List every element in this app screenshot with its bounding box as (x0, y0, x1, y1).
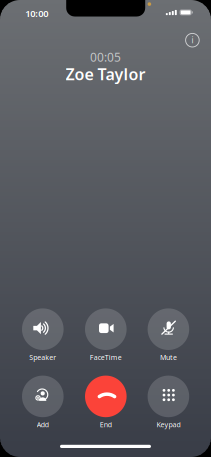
staticText: FaceTime (90, 353, 122, 362)
button[interactable]: End (77, 376, 135, 432)
button[interactable]: Speaker (14, 308, 72, 364)
staticText: Keypad (156, 420, 180, 429)
button[interactable]: Keypad (139, 376, 197, 432)
staticText: Speaker (29, 353, 56, 362)
button[interactable]: FaceTime (77, 308, 135, 364)
button[interactable]: Mute (139, 308, 197, 364)
button[interactable]: Call details (180, 28, 204, 52)
staticText: Add (37, 420, 49, 429)
staticText: End (100, 420, 112, 429)
staticText: 10:00 (25, 7, 48, 20)
staticText: Mute (160, 353, 177, 362)
button[interactable]: Add (14, 376, 72, 432)
staticText: Zoe Taylor (65, 63, 145, 85)
staticText: i (191, 35, 193, 46)
staticText: 00:05 (90, 49, 121, 65)
